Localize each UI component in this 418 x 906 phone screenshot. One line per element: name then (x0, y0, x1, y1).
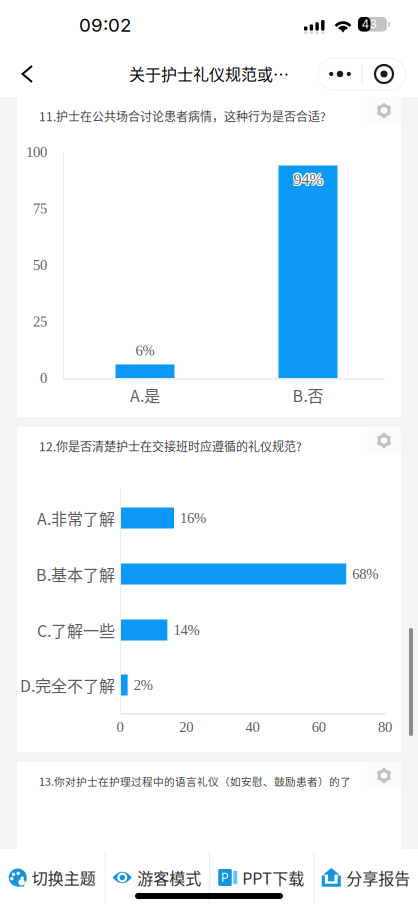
button[interactable]: Close (362, 58, 406, 90)
staticText: 25 (33, 313, 47, 330)
staticText: 60 (312, 719, 326, 735)
staticText: 6% (135, 342, 154, 358)
staticText: C.了解一些 (37, 618, 115, 642)
staticText: 94% (293, 172, 322, 189)
button[interactable]: Chart settings (367, 427, 401, 454)
staticText: 43 (361, 17, 376, 31)
staticText: 50 (33, 257, 47, 273)
staticText: 09:02 (79, 14, 131, 36)
staticText: 75 (33, 200, 47, 217)
staticText: A.非常了解 (37, 506, 115, 530)
staticText: 80 (378, 719, 392, 735)
staticText: 11.护士在公共场合讨论患者病情，这种行为是否合适? (39, 107, 326, 125)
staticText: B.否 (292, 383, 323, 407)
staticText: 游客模式 (137, 866, 201, 889)
button[interactable]: Chart settings (367, 762, 401, 789)
button[interactable]: 分享报告 (313, 849, 418, 906)
staticText: D.完全不了解 (20, 673, 115, 697)
staticText: 94% (292, 170, 321, 187)
staticText: 68% (352, 566, 378, 582)
button[interactable]: Chart settings (367, 97, 401, 124)
button[interactable]: 游客模式 (104, 849, 209, 906)
staticText: 0 (40, 370, 47, 386)
staticText: B.基本了解 (36, 562, 115, 586)
staticText: 94% (293, 171, 322, 188)
staticText: 关于护士礼仪规范或… (129, 62, 289, 85)
staticText: PPT下载 (242, 866, 304, 889)
staticText: 100 (26, 144, 47, 160)
staticText: 94% (292, 171, 321, 188)
staticText: 切换主题 (32, 866, 96, 889)
button[interactable]: Back (6, 56, 50, 92)
staticText: 16% (180, 510, 206, 526)
staticText: A.是 (130, 383, 160, 407)
staticText: 94% (295, 170, 324, 187)
staticText: 94% (295, 172, 324, 189)
staticText: 14% (173, 622, 199, 638)
staticText: 94% (292, 172, 321, 189)
staticText: 94% (293, 171, 322, 188)
staticText: 分享报告 (346, 866, 410, 889)
staticText: 20 (179, 719, 193, 735)
staticText: 94% (295, 171, 324, 188)
staticText: P (221, 870, 229, 885)
staticText: 0 (116, 719, 123, 735)
staticText: 40 (245, 719, 259, 735)
button[interactable]: More options (318, 58, 362, 90)
button[interactable]: 切换主题 (0, 849, 104, 906)
staticText: 94% (293, 170, 322, 187)
staticText: 2% (134, 677, 153, 693)
staticText: 13.你对护士在护理过程中的语言礼仪（如安慰、鼓励患者）的了 (39, 773, 351, 789)
button[interactable]: P (209, 849, 313, 906)
staticText: 12.你是否清楚护士在交接班时应遵循的礼仪规范? (39, 437, 302, 455)
